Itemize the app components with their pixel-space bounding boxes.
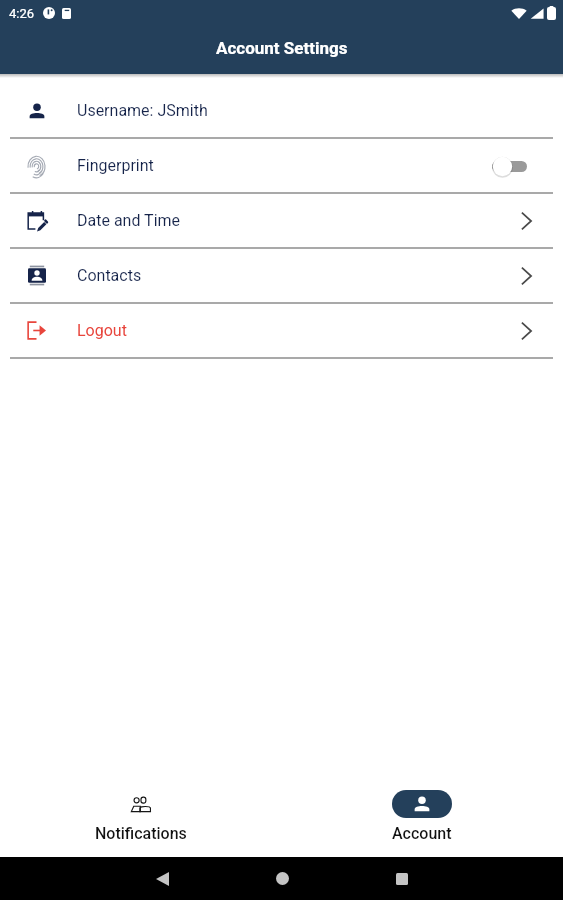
button[interactable]: Open (514, 319, 538, 343)
button[interactable]: Open (514, 209, 538, 233)
staticText: Date and Time (77, 211, 181, 230)
button[interactable]: Date and Time (0, 194, 563, 249)
staticText: Account (392, 824, 452, 843)
button[interactable]: Open (514, 264, 538, 288)
staticText: 4:26 (9, 6, 35, 21)
staticText: Notifications (95, 824, 187, 843)
button[interactable]: Notifications (0, 789, 281, 843)
button[interactable]: Fingerprint toggle (483, 152, 538, 180)
staticText: Logout (77, 321, 127, 340)
button[interactable]: Fingerprint (0, 139, 563, 194)
button[interactable]: Back (102, 857, 222, 900)
button[interactable]: Contacts (0, 249, 563, 304)
staticText: Account Settings (216, 38, 348, 58)
button[interactable]: Recents (342, 857, 462, 900)
button[interactable]: Home (222, 857, 342, 900)
staticText: Fingerprint (77, 156, 154, 175)
button[interactable]: Logout (0, 304, 563, 359)
button[interactable]: Account (281, 789, 563, 843)
staticText: Contacts (77, 266, 142, 285)
staticText: Username: JSmith (77, 101, 208, 120)
button[interactable]: Username: JSmith (0, 84, 563, 139)
